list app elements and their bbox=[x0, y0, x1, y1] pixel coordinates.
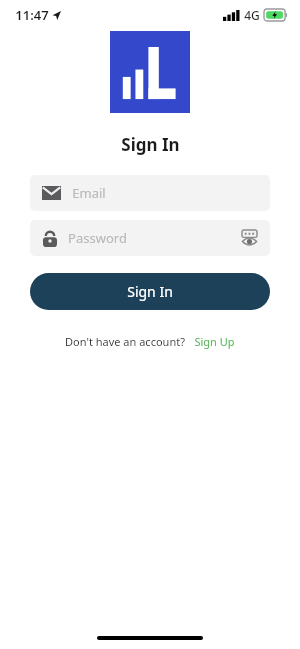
staticText: 11:47 bbox=[15, 6, 49, 24]
button[interactable]: Email bbox=[30, 175, 270, 211]
staticText: Email bbox=[72, 184, 106, 202]
staticText: Sign Up bbox=[194, 334, 235, 349]
button[interactable]: Password bbox=[30, 220, 270, 256]
button[interactable]: Show password bbox=[237, 226, 261, 250]
staticText: Sign In bbox=[127, 282, 173, 301]
staticText: 4G bbox=[244, 7, 260, 23]
button[interactable]: Sign Up bbox=[193, 332, 236, 351]
staticText: Password bbox=[68, 229, 127, 247]
staticText: Sign In bbox=[121, 133, 180, 156]
button[interactable]: Sign In bbox=[30, 273, 270, 310]
staticText: Don't have an account? bbox=[65, 334, 185, 349]
